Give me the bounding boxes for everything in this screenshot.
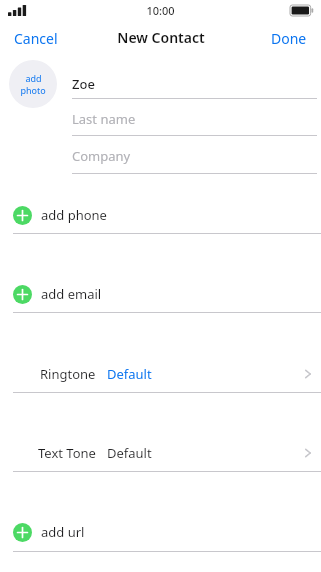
staticText: Done	[271, 29, 307, 48]
staticText: Default	[107, 444, 152, 462]
other: Open	[301, 446, 315, 460]
button[interactable]: add	[9, 60, 57, 108]
staticText: add url	[41, 523, 85, 541]
staticText: Default	[107, 365, 152, 383]
button[interactable]: add phone	[0, 201, 321, 229]
staticText: Cancel	[14, 29, 58, 48]
button[interactable]: Text Tone	[0, 439, 321, 466]
button[interactable]: Cancel	[8, 26, 64, 51]
staticText: photo	[20, 84, 46, 96]
button[interactable]: Ringtone	[0, 360, 321, 387]
button[interactable]: Last name	[72, 106, 321, 132]
button[interactable]: add url	[0, 518, 321, 546]
button[interactable]: add email	[0, 280, 321, 308]
button[interactable]: Zoe	[72, 71, 321, 97]
staticText: add phone	[41, 206, 107, 224]
other: Open	[301, 367, 315, 381]
staticText: Ringtone	[40, 365, 96, 383]
staticText: 10:00	[146, 3, 175, 18]
button[interactable]: Company	[72, 143, 321, 169]
staticText: Text Tone	[38, 444, 96, 462]
staticText: Company	[72, 147, 131, 165]
staticText: add email	[41, 285, 102, 303]
staticText: add	[25, 72, 42, 84]
button[interactable]: Done	[265, 26, 313, 51]
staticText: Zoe	[72, 75, 95, 93]
staticText: New Contact	[117, 28, 205, 47]
staticText: Last name	[72, 110, 136, 128]
